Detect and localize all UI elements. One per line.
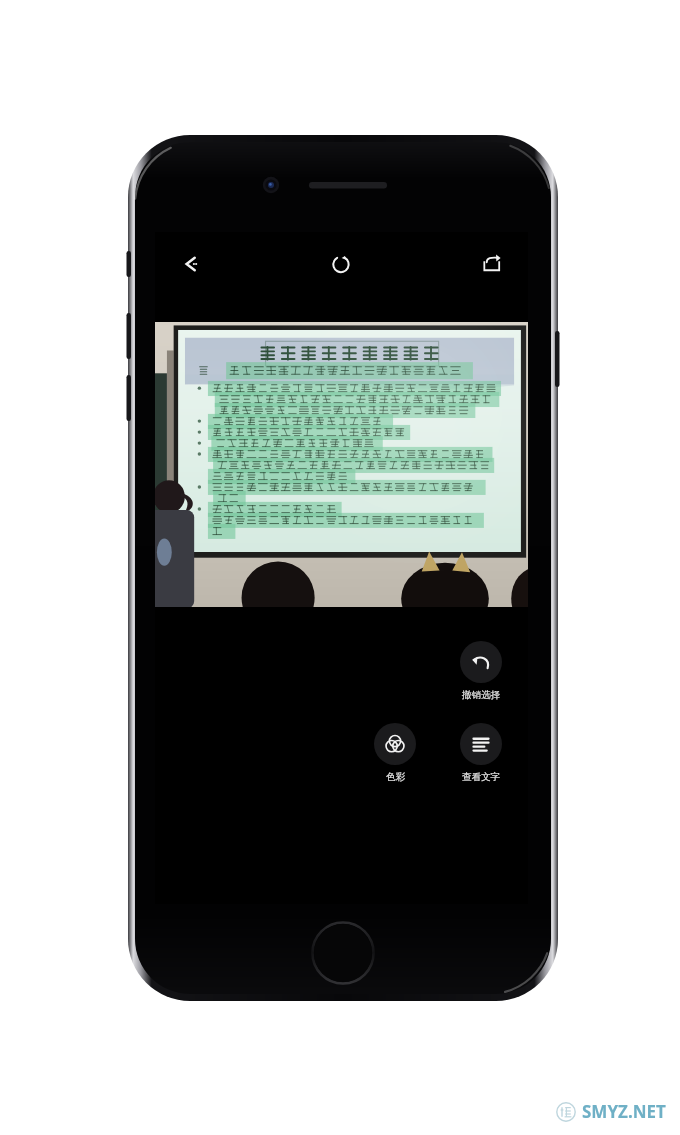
staticText: 撤销选择 xyxy=(462,689,500,701)
button[interactable]: Back xyxy=(169,242,213,286)
button[interactable]: View text xyxy=(452,721,510,785)
button[interactable]: Color xyxy=(366,721,424,785)
button[interactable]: Undo selection xyxy=(452,639,510,703)
staticText: 查看文字 xyxy=(462,771,500,783)
button[interactable]: Share xyxy=(470,242,514,286)
button[interactable]: Rotate xyxy=(319,242,363,286)
staticText: SMYZ.NET xyxy=(582,1100,666,1123)
staticText: 色彩 xyxy=(386,771,405,783)
